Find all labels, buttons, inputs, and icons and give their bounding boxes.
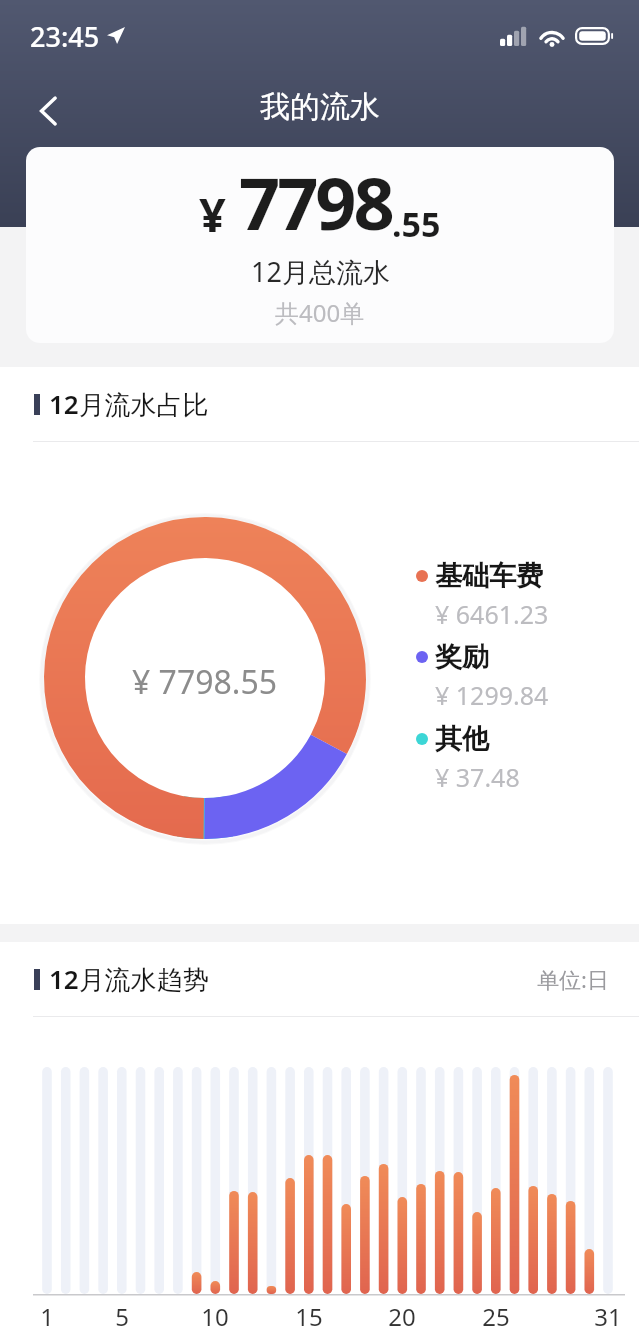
staticText: ¥ 6461.23 <box>435 597 549 631</box>
staticText: 其他 <box>435 722 489 756</box>
button[interactable]: Back <box>20 83 76 139</box>
staticText: 23:45 <box>30 18 100 55</box>
staticText: 20 <box>377 1300 427 1331</box>
staticText: 基础车费 <box>435 559 543 593</box>
staticText: 25 <box>471 1300 521 1331</box>
staticText: 12月总流水 <box>251 253 390 290</box>
staticText: 7798 <box>239 153 392 251</box>
staticText: 31 <box>583 1300 633 1331</box>
staticText: 奖励 <box>435 640 489 674</box>
staticText: 单位:日 <box>537 964 609 994</box>
button[interactable]: 奖励 <box>416 640 530 712</box>
staticText: 15 <box>284 1300 334 1331</box>
staticText: 共400单 <box>275 296 365 329</box>
staticText: ¥ <box>199 182 226 246</box>
staticText: 我的流水 <box>260 88 380 126</box>
staticText: ¥ 37.48 <box>435 760 520 794</box>
staticText: ¥ 1299.84 <box>435 678 549 712</box>
staticText: 1 <box>22 1300 72 1331</box>
staticText: ¥ 7798.55 <box>132 660 278 704</box>
button[interactable]: 基础车费 <box>416 559 543 631</box>
staticText: 10 <box>190 1300 240 1331</box>
staticText: .55 <box>392 201 441 247</box>
staticText: 12月流水占比 <box>49 386 209 422</box>
staticText: 5 <box>97 1300 147 1331</box>
staticText: 12月流水趋势 <box>49 961 209 997</box>
button[interactable]: 其他 <box>416 722 501 794</box>
